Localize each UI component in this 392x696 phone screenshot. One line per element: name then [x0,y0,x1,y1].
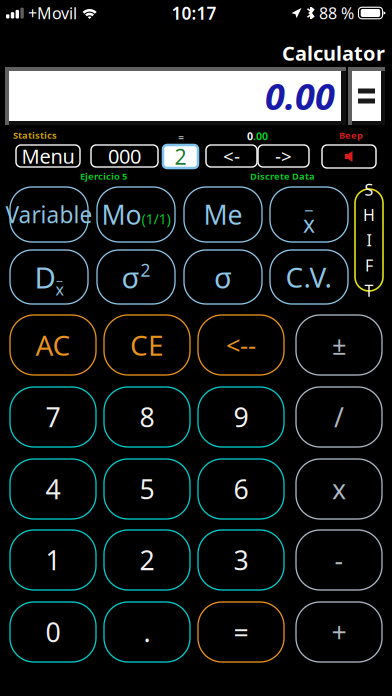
staticText: T [364,280,373,301]
button[interactable]: 1 [10,530,96,590]
button[interactable]: 000 [91,145,158,167]
staticText: <-- [226,328,256,362]
staticText: AC [35,326,70,364]
staticText: .00 [253,129,268,143]
button[interactable]: _ [270,187,348,242]
button[interactable]: = [198,602,284,662]
staticText: -> [275,144,292,168]
button[interactable]: C.V. [270,250,348,304]
button[interactable]: <-- [198,315,284,375]
staticText: CE [130,326,164,364]
staticText: S [364,179,373,200]
button[interactable]: 5 [104,459,190,519]
button[interactable]: 2 [104,530,190,590]
staticText: . [143,614,150,650]
button[interactable]: 4 [10,459,96,519]
staticText: 6 [233,471,248,507]
button[interactable]: - [296,530,382,590]
staticText: 4 [45,471,60,507]
staticText: Calculator [282,40,385,66]
staticText: + [331,614,346,650]
staticText: +Movil [28,2,77,24]
button[interactable]: σ [184,250,262,304]
staticText: σ [214,257,232,296]
button[interactable]: . [104,602,190,662]
staticText: 10:17 [171,1,216,24]
button[interactable]: S [355,189,383,291]
staticText: 9 [233,399,248,435]
button[interactable]: D [10,250,88,304]
staticText: ± [332,328,346,362]
staticText: C.V. [285,258,332,296]
staticText: 0 [247,129,253,143]
staticText: 5 [139,471,154,507]
button[interactable]: -> [258,145,309,167]
staticText: Statistics [13,129,57,141]
button[interactable]: 8 [104,387,190,447]
staticText: Variable [5,199,92,229]
button[interactable]: Variable [10,187,88,242]
staticText: 1 [45,542,60,578]
staticText: (1/1) [141,209,170,228]
staticText: 8 [139,399,154,435]
staticText: I [366,229,371,251]
staticText: _ [56,266,62,284]
staticText: Menu [21,143,74,169]
button[interactable]: <- [206,145,257,167]
staticText: = [178,130,184,144]
staticText: 7 [45,399,60,435]
button[interactable]: 7 [10,387,96,447]
staticText: - [334,542,343,578]
staticText: 000 [108,143,141,169]
staticText: 88 % [319,2,354,24]
staticText: F [365,255,373,276]
staticText: Beep [339,129,363,141]
staticText: D [34,257,55,296]
staticText: 2 [139,542,154,578]
staticText: H [363,204,375,225]
staticText: σ [121,257,139,296]
button[interactable]: 9 [198,387,284,447]
staticText: Me [203,197,242,232]
button[interactable]: Beep [322,145,376,168]
staticText: Ejercicio 5 [80,170,127,182]
staticText: x [303,209,315,239]
button[interactable]: 3 [198,530,284,590]
button[interactable] [348,67,385,125]
staticText: = [233,614,248,650]
staticText: _ [305,190,313,213]
staticText: 2 [174,142,186,171]
button[interactable]: 2 [163,145,198,168]
button[interactable]: 6 [198,459,284,519]
staticText: Mo [101,197,141,232]
button[interactable]: σ [97,250,175,304]
button[interactable]: AC [10,315,96,375]
button[interactable]: CE [104,315,190,375]
button[interactable]: Mo [97,187,175,242]
staticText: 0.00 [265,72,335,120]
staticText: 3 [233,542,248,578]
button[interactable]: x [296,459,382,519]
button[interactable]: + [296,602,382,662]
staticText: x [55,279,63,300]
button[interactable]: Me [184,187,262,242]
button[interactable]: / [296,387,382,447]
staticText: Discrete Data [250,170,315,182]
button[interactable]: Menu [16,145,80,167]
staticText: / [334,399,344,435]
staticText: 2 [140,258,150,281]
button[interactable]: ± [296,315,382,375]
staticText: 0 [45,614,60,650]
staticText: x [332,471,346,507]
button[interactable]: 0 [10,602,96,662]
staticText: <- [223,144,240,168]
